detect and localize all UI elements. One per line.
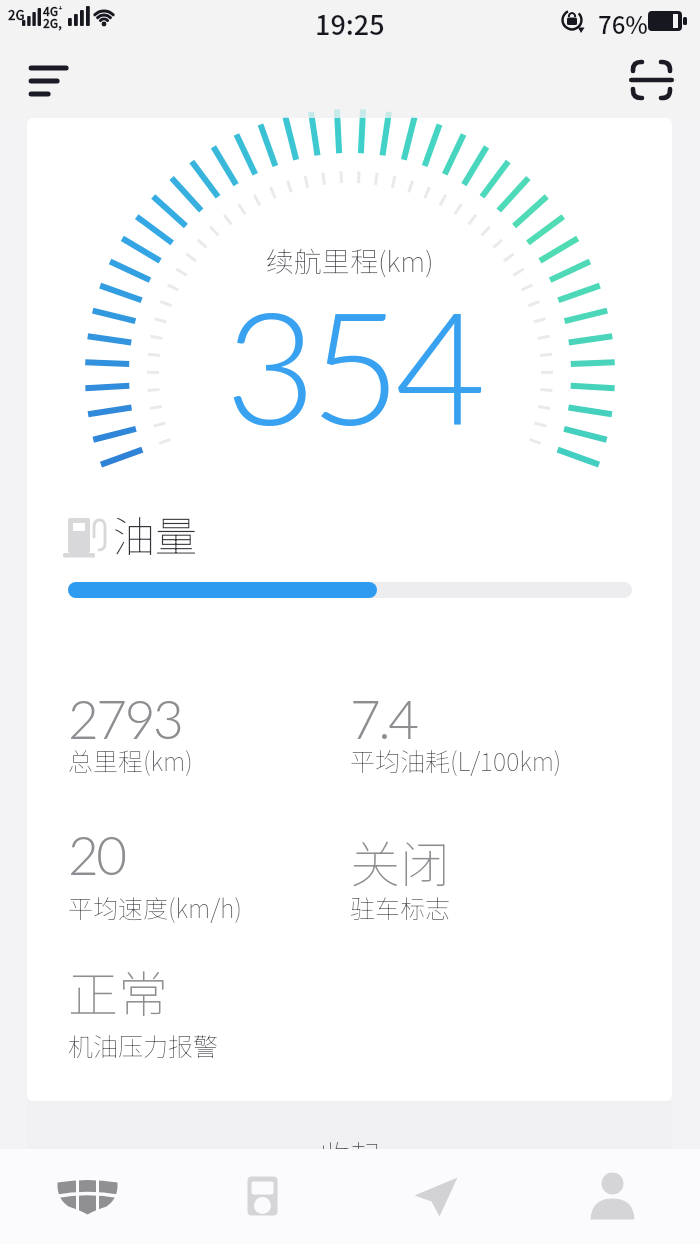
staticText: 平均速度(km/h) xyxy=(68,889,242,925)
staticText: 续航里程(km) xyxy=(266,240,434,281)
staticText: 正常 xyxy=(68,955,168,1027)
staticText: 2G, xyxy=(43,14,62,31)
button[interactable] xyxy=(525,1149,700,1244)
staticText: 354 xyxy=(225,270,481,458)
staticText: 19:25 xyxy=(315,4,385,43)
button[interactable] xyxy=(350,1149,525,1244)
button[interactable]: 收起 xyxy=(27,1101,672,1149)
staticText: 关闭 xyxy=(350,825,450,897)
staticText: 总里程(km) xyxy=(68,742,193,778)
button[interactable] xyxy=(175,1149,350,1244)
staticText: 20 xyxy=(68,823,125,887)
staticText: 机油压力报警 xyxy=(68,1027,219,1063)
staticText: 2G xyxy=(8,5,25,24)
button[interactable] xyxy=(0,1149,175,1244)
staticText: 2793 xyxy=(68,687,182,751)
staticText: 驻车标志 xyxy=(350,889,451,925)
staticText: 76% xyxy=(598,6,648,41)
staticText: 收起 xyxy=(320,1132,380,1149)
staticText: 油量 xyxy=(113,503,198,564)
button[interactable] xyxy=(16,54,82,106)
staticText: 7.4 xyxy=(350,687,417,751)
button[interactable] xyxy=(622,54,682,106)
staticText: 平均油耗(L/100km) xyxy=(350,742,562,778)
staticText: 4G⁺ xyxy=(43,2,63,19)
